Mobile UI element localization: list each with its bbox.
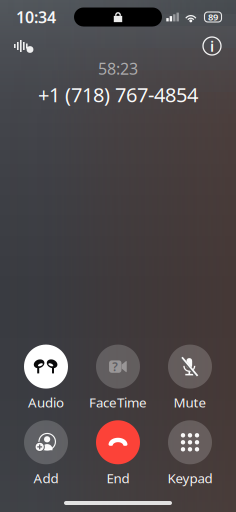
button[interactable]: Audio xyxy=(10,345,82,411)
button[interactable]: Voice Isolation xyxy=(14,38,34,53)
staticText: ? xyxy=(112,359,118,374)
staticText: Audio xyxy=(28,394,64,411)
staticText: Add xyxy=(33,469,58,487)
button[interactable]: Mute xyxy=(154,345,226,411)
staticText: Keypad xyxy=(167,469,212,487)
button[interactable]: ? xyxy=(82,345,154,411)
staticText: i xyxy=(210,36,214,56)
button[interactable]: Call Info xyxy=(202,36,222,56)
staticText: Mute xyxy=(173,394,206,411)
staticText: +1 (718) 767-4854 xyxy=(38,81,198,108)
staticText: FaceTime xyxy=(89,394,147,411)
button[interactable]: Keypad xyxy=(154,420,226,487)
button[interactable]: End xyxy=(82,420,154,487)
button[interactable]: Add xyxy=(10,420,82,487)
staticText: 58:23 xyxy=(98,58,138,79)
staticText: 10:34 xyxy=(16,6,56,28)
staticText: 89 xyxy=(208,11,218,23)
staticText: End xyxy=(106,469,129,487)
